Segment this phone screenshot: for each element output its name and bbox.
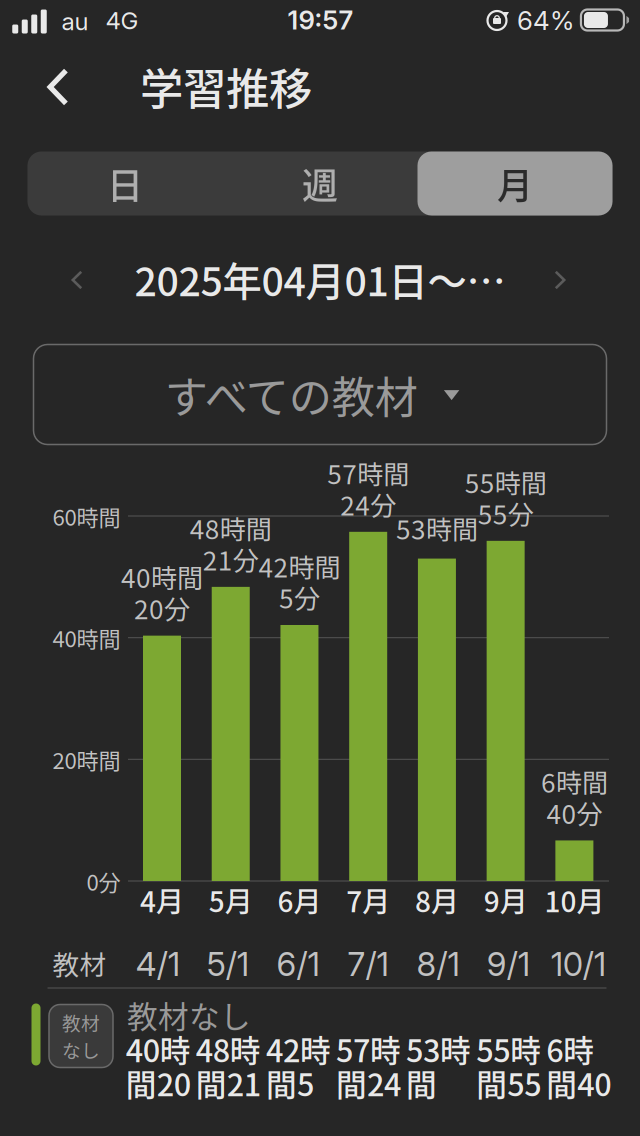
staticText: 4/1 [136,944,180,984]
staticText: 24分 [340,485,396,523]
staticText: 週 [302,157,338,209]
staticText: 8月 [415,880,459,920]
staticText: 60時間 [52,500,120,532]
button[interactable]: 日 [27,151,222,215]
button[interactable]: すべての教材 [33,344,606,444]
staticText: 42時間 [258,547,340,585]
staticText: 20分 [134,589,190,627]
staticText: 7月 [346,880,390,920]
staticText: 48時間 [190,509,272,547]
button[interactable]: Previous period [49,252,105,308]
staticText: 間55 [476,1061,541,1105]
staticText: 64% [517,5,574,36]
staticText: なし [62,1036,100,1063]
staticText: 9/1 [487,944,530,984]
staticText: 間5 [266,1061,314,1105]
staticText: 9月 [484,880,528,920]
staticText: 40分 [546,794,602,831]
staticText: 月 [497,157,533,209]
staticText: 日 [107,157,143,209]
staticText: 55分 [478,494,534,532]
staticText: 8/1 [417,944,460,984]
staticText: 4月 [140,880,184,920]
staticText: 間24 [336,1061,401,1105]
staticText: 40時 [126,1027,191,1071]
staticText: 間21 [196,1061,261,1105]
button[interactable]: Back [26,55,90,119]
staticText: 53時 [406,1027,471,1071]
staticText: 48時 [196,1027,261,1071]
staticText: 21分 [203,540,259,578]
staticText: 教材 [62,1009,100,1036]
staticText: 教材 [52,944,106,982]
staticText: 42時 [266,1027,331,1071]
staticText: 間 [406,1061,437,1105]
staticText: 6時間 [541,762,608,800]
staticText: 学習推移 [140,55,312,117]
staticText: 40時間 [121,558,203,595]
staticText: 10/1 [551,944,606,984]
staticText: 0分 [86,865,120,897]
staticText: 55時 [476,1027,541,1071]
button[interactable]: 週 [222,151,417,215]
staticText: 6/1 [276,944,319,984]
staticText: 55時間 [465,463,547,501]
staticText: 教材なし [127,993,251,1037]
staticText: au [61,7,88,36]
staticText: 間40 [546,1061,611,1105]
staticText: 4G [105,6,138,35]
staticText: 6時 [546,1027,594,1071]
staticText: 5月 [209,880,253,920]
staticText: 6月 [277,880,321,920]
staticText: すべての教材 [165,363,418,426]
staticText: 19:57 [287,4,353,36]
staticText: 5/1 [207,944,249,984]
staticText: 間20 [126,1061,191,1105]
staticText: 53時間 [396,509,478,547]
staticText: 57時 [336,1027,401,1071]
button[interactable]: Next period [532,252,588,308]
staticText: 40時間 [52,622,120,654]
button[interactable]: 月 [417,151,612,215]
staticText: 7/1 [347,944,388,984]
staticText: 10月 [544,880,604,920]
staticText: 5分 [279,578,320,616]
staticText: 20時間 [52,743,120,775]
staticText: 57時間 [327,454,409,492]
staticText: 2025年04月01日〜… [134,250,505,307]
